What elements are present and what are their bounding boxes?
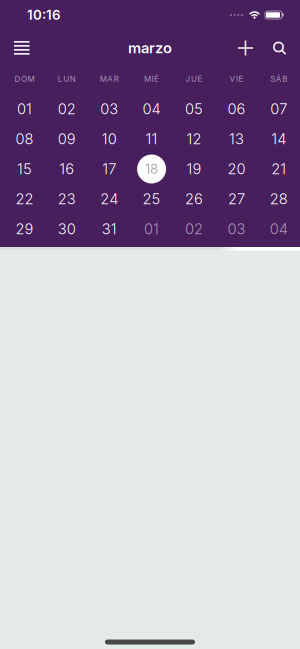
button[interactable]: 21 bbox=[258, 154, 300, 184]
staticText: LUN bbox=[58, 74, 76, 83]
button[interactable]: 19 bbox=[173, 154, 215, 184]
staticText: 31 bbox=[102, 220, 117, 238]
staticText: 03 bbox=[227, 220, 245, 238]
staticText: 07 bbox=[270, 100, 287, 118]
button[interactable]: 02 bbox=[46, 94, 88, 124]
staticText: 06 bbox=[227, 100, 245, 118]
button[interactable]: 20 bbox=[215, 154, 258, 184]
staticText: 08 bbox=[15, 130, 33, 148]
button[interactable]: 04 bbox=[130, 94, 173, 124]
staticText: 13 bbox=[229, 130, 244, 148]
button[interactable]: 09 bbox=[46, 124, 88, 154]
staticText: 10 bbox=[102, 130, 117, 148]
staticText: 18 bbox=[145, 161, 158, 177]
button[interactable]: 15 bbox=[3, 154, 46, 184]
staticText: SÁB bbox=[270, 74, 287, 83]
button[interactable]: 30 bbox=[46, 214, 88, 244]
staticText: MIÉ bbox=[144, 74, 159, 83]
staticText: 26 bbox=[185, 190, 203, 208]
staticText: 27 bbox=[228, 190, 245, 208]
button[interactable]: 03 bbox=[215, 214, 258, 244]
staticText: 28 bbox=[270, 190, 288, 208]
button[interactable]: 07 bbox=[258, 94, 300, 124]
staticText: 04 bbox=[143, 100, 161, 118]
staticText: 10:16 bbox=[27, 7, 61, 23]
button[interactable]: 17 bbox=[88, 154, 130, 184]
staticText: 17 bbox=[102, 160, 116, 178]
staticText: 19 bbox=[186, 160, 201, 178]
staticText: 25 bbox=[143, 190, 161, 208]
button[interactable]: 11 bbox=[130, 124, 173, 154]
staticText: 14 bbox=[271, 130, 286, 148]
staticText: 05 bbox=[185, 100, 203, 118]
button[interactable]: 02 bbox=[173, 214, 215, 244]
button[interactable]: 27 bbox=[215, 184, 258, 214]
button[interactable]: 03 bbox=[88, 94, 130, 124]
button[interactable]: Search bbox=[253, 41, 300, 54]
staticText: 12 bbox=[186, 130, 201, 148]
button[interactable]: 08 bbox=[3, 124, 46, 154]
button[interactable]: 23 bbox=[46, 184, 88, 214]
button[interactable]: 12 bbox=[173, 124, 215, 154]
staticText: 20 bbox=[227, 160, 245, 178]
staticText: 09 bbox=[58, 130, 76, 148]
button[interactable]: 01 bbox=[130, 214, 173, 244]
staticText: VIE bbox=[229, 74, 243, 83]
button[interactable]: 24 bbox=[88, 184, 130, 214]
button[interactable]: 18 bbox=[130, 154, 173, 184]
button[interactable]: 31 bbox=[88, 214, 130, 244]
button[interactable]: Add event bbox=[238, 40, 253, 55]
staticText: 21 bbox=[271, 160, 286, 178]
staticText: 15 bbox=[17, 160, 32, 178]
button[interactable]: 10 bbox=[88, 124, 130, 154]
staticText: 02 bbox=[58, 100, 76, 118]
button[interactable]: 06 bbox=[215, 94, 258, 124]
button[interactable]: 04 bbox=[258, 214, 300, 244]
button[interactable]: 13 bbox=[215, 124, 258, 154]
staticText: 03 bbox=[100, 100, 118, 118]
staticText: 22 bbox=[15, 190, 33, 208]
staticText: MAR bbox=[100, 74, 119, 83]
button[interactable]: 05 bbox=[173, 94, 215, 124]
button[interactable]: 29 bbox=[3, 214, 46, 244]
staticText: DOM bbox=[14, 74, 34, 83]
staticText: 30 bbox=[58, 220, 76, 238]
staticText: 29 bbox=[15, 220, 33, 238]
staticText: 24 bbox=[100, 190, 118, 208]
staticText: 16 bbox=[59, 160, 74, 178]
staticText: 01 bbox=[144, 220, 159, 238]
staticText: JUE bbox=[185, 74, 202, 83]
staticText: marzo bbox=[128, 39, 172, 57]
button[interactable]: 22 bbox=[3, 184, 46, 214]
staticText: 01 bbox=[17, 100, 32, 118]
staticText: 04 bbox=[270, 220, 288, 238]
button[interactable]: 16 bbox=[46, 154, 88, 184]
button[interactable]: 25 bbox=[130, 184, 173, 214]
button[interactable]: 14 bbox=[258, 124, 300, 154]
button[interactable]: 28 bbox=[258, 184, 300, 214]
staticText: 02 bbox=[185, 220, 203, 238]
button[interactable]: 01 bbox=[3, 94, 46, 124]
button[interactable]: Menu bbox=[0, 41, 30, 55]
staticText: 23 bbox=[58, 190, 76, 208]
button[interactable]: 26 bbox=[173, 184, 215, 214]
staticText: 11 bbox=[146, 130, 158, 148]
